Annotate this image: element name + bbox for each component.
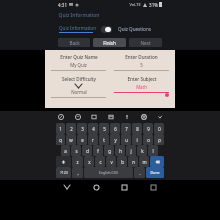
button[interactable]: 8: [132, 123, 142, 134]
button[interactable]: 3: [77, 123, 87, 134]
staticText: .: [139, 170, 141, 176]
button[interactable]: g: [104, 145, 114, 156]
button[interactable]: Backspace: [150, 156, 164, 167]
button[interactable]: 5: [99, 123, 109, 134]
staticText: w: [69, 137, 73, 143]
button[interactable]: Settings: [139, 112, 148, 121]
button[interactable]: f: [93, 145, 103, 156]
button[interactable]: p: [154, 134, 164, 145]
button[interactable]: y: [110, 134, 120, 145]
button[interactable]: .: [134, 167, 145, 178]
button[interactable]: Clipboard: [106, 112, 115, 121]
button[interactable]: v: [106, 156, 116, 167]
staticText: Done: [150, 170, 160, 175]
button[interactable]: u: [121, 134, 131, 145]
button[interactable]: x: [84, 156, 94, 167]
staticText: 4: [92, 126, 95, 132]
staticText: 5: [103, 126, 106, 132]
button[interactable]: Emoji: [73, 112, 82, 121]
button[interactable]: h: [115, 145, 125, 156]
button[interactable]: More: [155, 112, 164, 121]
staticText: 3: [81, 126, 84, 132]
button[interactable]: 7: [121, 123, 131, 134]
button[interactable]: 9: [143, 123, 153, 134]
staticText: 4:31: [58, 2, 67, 8]
button[interactable]: Toggle section: [101, 26, 112, 33]
staticText: f: [97, 148, 99, 154]
staticText: u: [125, 137, 128, 143]
button[interactable]: Stickers: [89, 112, 98, 121]
button[interactable]: t: [99, 134, 109, 145]
staticText: z: [76, 159, 79, 165]
staticText: t: [103, 137, 105, 143]
button[interactable]: 4: [88, 123, 98, 134]
staticText: o: [147, 137, 150, 143]
staticText: My Quiz: [70, 62, 87, 68]
button[interactable]: Enter Subject: [114, 76, 169, 97]
button[interactable]: z: [72, 156, 83, 167]
button[interactable]: k: [137, 145, 147, 156]
button[interactable]: l: [148, 145, 158, 156]
button[interactable]: ,: [72, 167, 83, 178]
staticText: k: [141, 148, 144, 154]
staticText: d: [86, 148, 89, 154]
button[interactable]: Finish: [93, 38, 126, 47]
staticText: e: [81, 137, 84, 143]
button[interactable]: s: [71, 145, 81, 156]
staticText: Quiz Questions: [118, 26, 151, 32]
staticText: s: [75, 148, 78, 154]
button[interactable]: b: [117, 156, 127, 167]
staticText: l: [152, 148, 154, 154]
button[interactable]: English (US): [84, 167, 133, 178]
button[interactable]: Select Difficulty: [51, 76, 106, 98]
staticText: VoLTE: [129, 2, 141, 7]
button[interactable]: m: [139, 156, 149, 167]
button[interactable]: Quiz Questions: [117, 25, 152, 33]
button[interactable]: Back: [148, 182, 158, 192]
button[interactable]: Next: [129, 38, 162, 47]
button[interactable]: i: [132, 134, 142, 145]
staticText: r: [92, 137, 94, 143]
staticText: i: [136, 137, 138, 143]
button[interactable]: d: [82, 145, 92, 156]
button[interactable]: Voice input: [122, 112, 131, 121]
button[interactable]: n: [128, 156, 138, 167]
button[interactable]: e: [77, 134, 87, 145]
staticText: 2: [70, 126, 73, 132]
staticText: a: [64, 148, 67, 154]
staticText: h: [119, 148, 122, 154]
button[interactable]: c: [95, 156, 105, 167]
button[interactable]: Quiz Information: [58, 24, 97, 34]
button[interactable]: Hide keyboard: [62, 182, 72, 192]
staticText: Back: [69, 40, 80, 46]
staticText: Quiz Information: [59, 25, 96, 31]
button[interactable]: q: [56, 134, 65, 145]
button[interactable]: ?123: [56, 167, 71, 178]
button[interactable]: j: [126, 145, 136, 156]
button[interactable]: Enter Duration: [114, 54, 169, 71]
staticText: English (US): [99, 170, 118, 175]
staticText: 5: [140, 62, 143, 68]
button[interactable]: Gboard: [56, 112, 65, 121]
button[interactable]: 0: [154, 123, 164, 134]
button[interactable]: Home: [91, 182, 101, 192]
staticText: m: [142, 159, 147, 165]
staticText: q: [59, 137, 62, 143]
button[interactable]: Shift: [56, 156, 71, 167]
staticText: g: [108, 148, 111, 154]
button[interactable]: r: [88, 134, 98, 145]
button[interactable]: Done: [146, 167, 164, 178]
button[interactable]: a: [61, 145, 70, 156]
staticText: b: [121, 159, 124, 165]
staticText: j: [130, 148, 132, 154]
button[interactable]: 2: [66, 123, 76, 134]
button[interactable]: Enter Quiz Name: [51, 54, 106, 71]
button[interactable]: w: [66, 134, 76, 145]
staticText: 7: [125, 126, 128, 132]
button[interactable]: 1: [56, 123, 65, 134]
button[interactable]: o: [143, 134, 153, 145]
button[interactable]: Recents: [119, 182, 129, 192]
staticText: Select Difficulty: [62, 76, 96, 82]
button[interactable]: Back: [58, 38, 90, 47]
button[interactable]: 6: [110, 123, 120, 134]
